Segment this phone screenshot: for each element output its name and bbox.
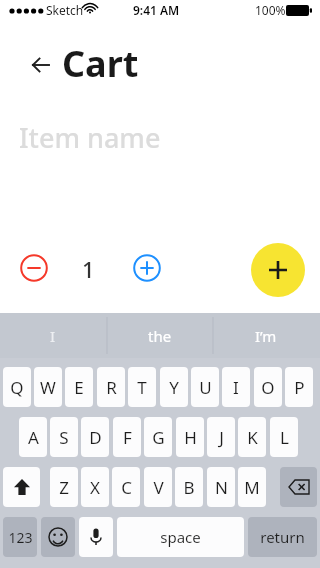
button[interactable]: Add item bbox=[251, 243, 305, 297]
button[interactable]: Q bbox=[3, 367, 31, 407]
button[interactable]: Y bbox=[160, 367, 188, 407]
button[interactable]: D bbox=[81, 417, 109, 457]
button[interactable]: I’m bbox=[213, 313, 319, 358]
staticText: I bbox=[233, 376, 239, 399]
button[interactable]: B bbox=[175, 467, 203, 507]
staticText: 1 bbox=[82, 254, 95, 284]
button[interactable]: W bbox=[34, 367, 62, 407]
staticText: I bbox=[50, 326, 56, 346]
staticText: Q bbox=[10, 376, 24, 399]
button[interactable]: Increase quantity bbox=[133, 254, 161, 282]
staticText: C bbox=[121, 476, 132, 499]
staticText: Y bbox=[169, 376, 179, 399]
button[interactable]: U bbox=[191, 367, 219, 407]
button[interactable]: H bbox=[176, 417, 204, 457]
staticText: T bbox=[137, 376, 147, 399]
staticText: J bbox=[219, 426, 224, 449]
button[interactable]: the bbox=[107, 313, 213, 358]
button[interactable]: Dictate bbox=[79, 517, 113, 557]
button[interactable]: F bbox=[113, 417, 141, 457]
staticText: Sketch bbox=[46, 2, 84, 18]
button[interactable]: L bbox=[270, 417, 298, 457]
button[interactable]: C bbox=[112, 467, 140, 507]
staticText: D bbox=[89, 426, 102, 449]
staticText: return bbox=[260, 527, 305, 547]
button[interactable]: A bbox=[19, 417, 47, 457]
button[interactable]: X bbox=[81, 467, 109, 507]
staticText: O bbox=[261, 376, 275, 399]
staticText: V bbox=[153, 476, 164, 499]
staticText: Z bbox=[59, 476, 69, 499]
staticText: U bbox=[199, 376, 212, 399]
button[interactable]: Item name bbox=[19, 119, 161, 156]
button[interactable]: E bbox=[65, 367, 93, 407]
staticText: 9:41 AM bbox=[133, 2, 180, 18]
button[interactable]: Shift bbox=[3, 467, 40, 507]
button[interactable]: J bbox=[207, 417, 235, 457]
staticText: K bbox=[247, 426, 258, 449]
staticText: B bbox=[183, 476, 195, 499]
staticText: X bbox=[90, 476, 100, 499]
staticText: A bbox=[28, 426, 39, 449]
staticText: W bbox=[40, 376, 56, 399]
button[interactable]: Backspace bbox=[280, 467, 317, 507]
button[interactable]: M bbox=[238, 467, 266, 507]
button[interactable]: N bbox=[207, 467, 235, 507]
button[interactable]: return bbox=[248, 517, 317, 557]
button[interactable]: T bbox=[128, 367, 156, 407]
button[interactable]: S bbox=[50, 417, 78, 457]
staticText: M bbox=[244, 476, 260, 499]
button[interactable]: O bbox=[254, 367, 282, 407]
staticText: 100% bbox=[255, 2, 286, 18]
button[interactable]: Z bbox=[50, 467, 78, 507]
staticText: Cart bbox=[62, 39, 139, 88]
staticText: the bbox=[148, 326, 172, 346]
staticText: E bbox=[74, 376, 84, 399]
staticText: G bbox=[152, 426, 165, 449]
staticText: space bbox=[160, 527, 201, 547]
button[interactable]: 123 bbox=[3, 517, 37, 557]
button[interactable]: G bbox=[144, 417, 172, 457]
button[interactable]: K bbox=[238, 417, 266, 457]
button[interactable]: V bbox=[144, 467, 172, 507]
button[interactable]: P bbox=[285, 367, 313, 407]
staticText: H bbox=[184, 426, 197, 449]
button[interactable]: Decrease quantity bbox=[20, 254, 48, 282]
button[interactable]: Back bbox=[26, 50, 56, 80]
staticText: R bbox=[106, 376, 117, 399]
staticText: L bbox=[280, 426, 289, 449]
button[interactable]: Emoji bbox=[41, 517, 75, 557]
staticText: P bbox=[294, 376, 305, 399]
staticText: N bbox=[215, 476, 228, 499]
button[interactable]: R bbox=[97, 367, 125, 407]
staticText: S bbox=[59, 426, 69, 449]
button[interactable]: space bbox=[117, 517, 244, 557]
staticText: F bbox=[123, 426, 132, 449]
button[interactable]: I bbox=[222, 367, 250, 407]
staticText: I’m bbox=[255, 326, 277, 346]
staticText: 123 bbox=[8, 528, 33, 547]
